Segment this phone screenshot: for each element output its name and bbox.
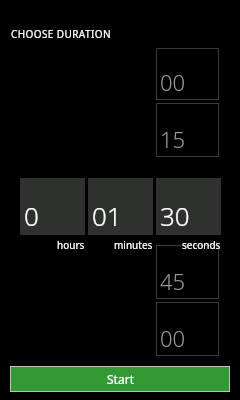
button[interactable]: 15 [156,103,219,157]
staticText: seconds [182,238,221,252]
staticText: 00 [160,323,186,353]
staticText: Start [107,371,134,387]
staticText: CHOOSE DURATION [11,27,111,41]
staticText: 00 [160,67,186,97]
button[interactable]: minutes [88,238,153,252]
button[interactable]: 00 [156,48,219,100]
button[interactable]: 01 [88,178,153,235]
button[interactable]: 0 [20,178,85,235]
staticText: 45 [160,266,186,296]
staticText: 0 [24,198,39,233]
button[interactable]: hours [20,238,85,252]
button[interactable]: seconds [156,238,221,252]
button[interactable]: 45 [156,245,219,299]
staticText: 01 [92,198,122,233]
staticText: 30 [160,198,190,233]
staticText: 15 [160,124,186,154]
staticText: minutes [114,238,153,252]
staticText: hours [57,238,85,252]
button[interactable]: Start [11,367,229,391]
button[interactable]: 00 [156,302,219,356]
button[interactable]: 30 [156,178,221,235]
